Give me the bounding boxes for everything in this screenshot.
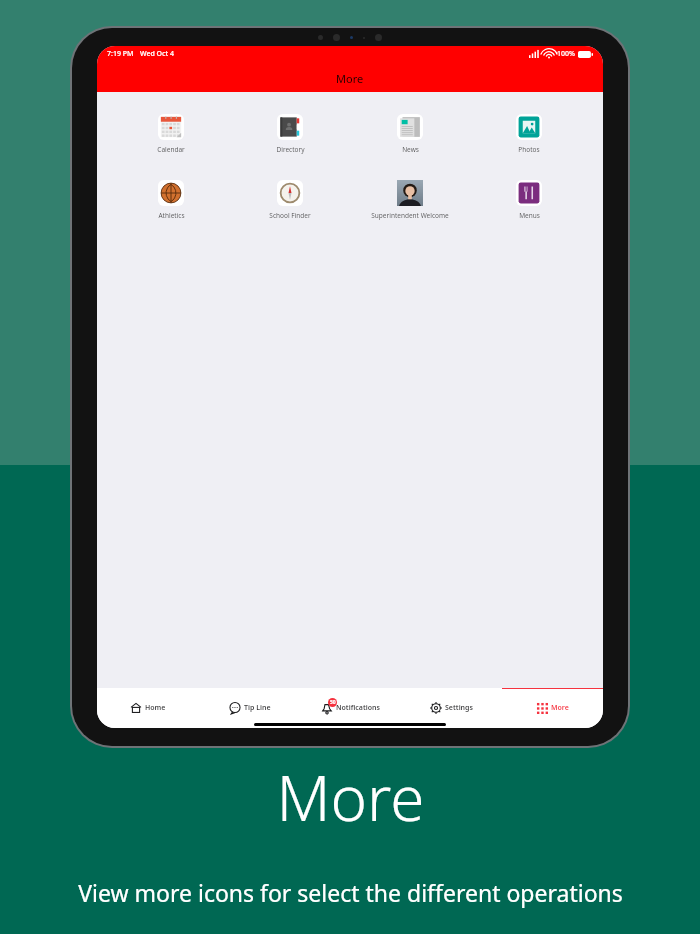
staticText: Directory <box>276 145 305 154</box>
staticText: News <box>402 145 419 154</box>
button[interactable]: 50 <box>300 688 401 728</box>
staticText: School Finder <box>269 211 311 220</box>
staticText: Superintendent Welcome <box>371 211 449 220</box>
staticText: More <box>276 755 425 839</box>
button[interactable]: School Finder <box>245 180 335 220</box>
staticText: Athletics <box>158 211 185 220</box>
button[interactable]: News <box>365 114 455 154</box>
button[interactable]: Tip Line <box>199 688 300 728</box>
staticText: Wed Oct 4 <box>140 49 175 59</box>
staticText: Home <box>145 703 166 713</box>
staticText: Notifications <box>336 703 380 713</box>
staticText: More <box>336 71 364 86</box>
button[interactable]: Home <box>97 688 199 728</box>
staticText: Settings <box>445 703 473 713</box>
staticText: View more icons for select the different… <box>78 877 623 908</box>
button[interactable]: Settings <box>401 688 502 728</box>
staticText: 50 <box>330 699 336 706</box>
button[interactable]: Directory <box>245 114 335 154</box>
button[interactable]: Menus <box>484 180 574 220</box>
button[interactable]: Superintendent Welcome <box>365 180 455 220</box>
button[interactable]: Photos <box>484 114 574 154</box>
staticText: More <box>551 703 569 713</box>
button[interactable]: More <box>502 688 603 728</box>
staticText: Photos <box>518 145 540 154</box>
button[interactable]: Calendar <box>126 114 216 154</box>
staticText: Tip Line <box>244 703 271 713</box>
staticText: Calendar <box>157 145 185 154</box>
staticText: Menus <box>519 211 540 220</box>
button[interactable]: Athletics <box>126 180 216 220</box>
staticText: 7:19 PM <box>107 49 134 59</box>
staticText: 100% <box>557 49 575 59</box>
